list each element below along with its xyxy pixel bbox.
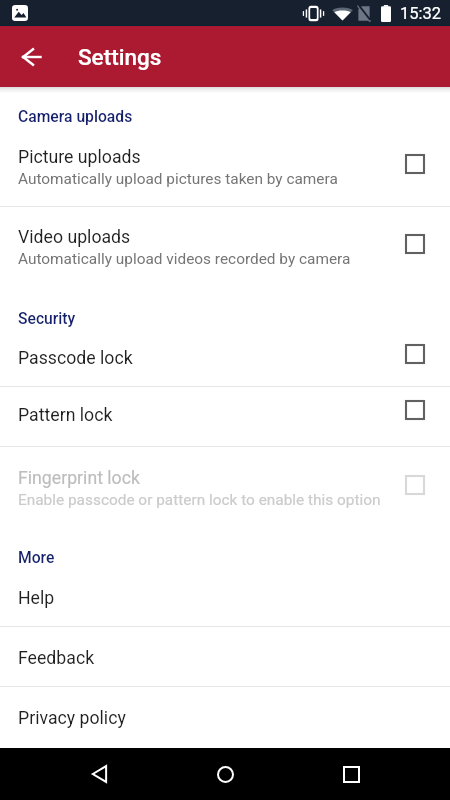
staticText: Enable passcode or pattern lock to enabl… — [18, 491, 381, 509]
staticText: Video uploads — [18, 227, 131, 248]
button[interactable] — [0, 627, 450, 686]
staticText: More — [18, 548, 55, 566]
staticText: Settings — [78, 44, 162, 70]
button[interactable] — [0, 387, 450, 446]
button[interactable]: Back — [74, 748, 126, 800]
button[interactable]: Home — [199, 748, 251, 800]
staticText: Pattern lock — [18, 405, 113, 426]
button[interactable] — [0, 207, 450, 288]
staticText: Automatically upload videos recorded by … — [18, 250, 351, 268]
staticText: Privacy policy — [18, 708, 126, 729]
button[interactable]: Recent apps — [325, 748, 377, 800]
staticText: Help — [18, 588, 55, 609]
staticText: Security — [18, 309, 76, 327]
button[interactable]: Navigate up — [8, 34, 54, 80]
staticText: Feedback — [18, 648, 95, 669]
button[interactable] — [0, 125, 450, 206]
staticText: Picture uploads — [18, 147, 141, 168]
staticText: 15:32 — [400, 4, 442, 23]
staticText: Fingerprint lock — [18, 468, 140, 489]
button[interactable] — [0, 447, 450, 528]
staticText: Automatically upload pictures taken by c… — [18, 170, 338, 188]
button[interactable] — [0, 328, 450, 386]
staticText: Camera uploads — [18, 107, 133, 125]
button[interactable] — [0, 567, 450, 626]
button[interactable] — [0, 687, 450, 748]
staticText: Passcode lock — [18, 348, 133, 369]
